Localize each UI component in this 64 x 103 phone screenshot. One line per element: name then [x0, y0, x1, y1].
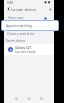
button[interactable]: Approx matching: [1, 20, 59, 31]
button[interactable]: Back: [6, 6, 12, 12]
staticText: Choose a saved device: [7, 32, 35, 36]
staticText: 9:30: [7, 1, 13, 5]
staticText: Locate device: [11, 7, 37, 12]
staticText: Device name: [8, 16, 24, 20]
button[interactable]: Galaxy S21: [4, 44, 54, 55]
button[interactable]: System navigation: [4, 94, 54, 103]
button[interactable]: More options: [47, 6, 53, 12]
staticText: Galaxy S21: [15, 46, 32, 50]
staticText: Approx matching: [6, 24, 32, 28]
staticText: Recent devices: [6, 39, 26, 43]
staticText: Last seen nearby: [15, 50, 36, 54]
